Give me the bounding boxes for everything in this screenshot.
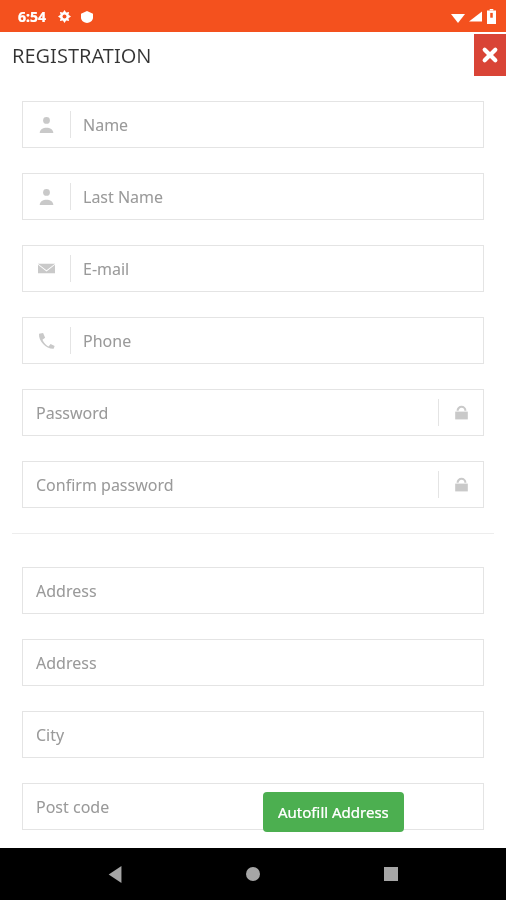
- button[interactable]: Post code: [22, 783, 484, 830]
- button[interactable]: Name: [22, 101, 484, 148]
- staticText: Last Name: [83, 186, 164, 208]
- staticText: E-mail: [83, 258, 130, 280]
- staticText: Post code: [36, 796, 110, 818]
- staticText: Confirm password: [36, 474, 174, 496]
- button[interactable]: Confirm password: [22, 461, 484, 508]
- staticText: Address: [36, 580, 97, 602]
- button[interactable]: Back: [92, 851, 138, 897]
- staticText: 6:54: [18, 7, 46, 26]
- button[interactable]: Last Name: [22, 173, 484, 220]
- button[interactable]: Home: [230, 851, 276, 897]
- button[interactable]: Phone: [22, 317, 484, 364]
- button[interactable]: Close: [474, 34, 506, 76]
- button[interactable]: City: [22, 711, 484, 758]
- staticText: City: [36, 724, 65, 746]
- staticText: Password: [36, 402, 109, 424]
- staticText: Address: [36, 652, 97, 674]
- button[interactable]: Address: [22, 639, 484, 686]
- button[interactable]: E-mail: [22, 245, 484, 292]
- staticText: Phone: [83, 330, 132, 352]
- staticText: REGISTRATION: [12, 42, 152, 69]
- staticText: Name: [83, 114, 129, 136]
- button[interactable]: Password: [22, 389, 484, 436]
- button[interactable]: Address: [22, 567, 484, 614]
- button[interactable]: Autofill Address: [263, 792, 404, 832]
- staticText: Autofill Address: [278, 802, 389, 822]
- button[interactable]: Recent apps: [368, 851, 414, 897]
